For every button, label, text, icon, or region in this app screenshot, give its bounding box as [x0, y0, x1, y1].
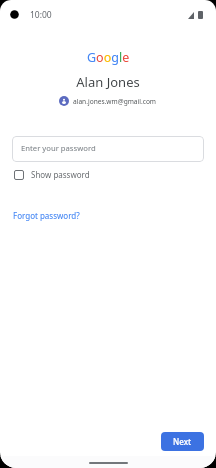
staticText: Alan Jones: [0, 73, 216, 91]
button[interactable]: Forgot password?: [13, 210, 80, 221]
staticText: Next: [173, 436, 192, 447]
staticText: Google: [87, 49, 130, 66]
staticText: 10:00: [30, 9, 52, 21]
other: Mobile signal: [188, 12, 194, 19]
staticText: Enter your password: [21, 143, 96, 153]
staticText: Show password: [31, 169, 90, 180]
button[interactable]: Enter your password: [12, 136, 204, 162]
staticText: alan.jones.wm@gmail.com: [73, 97, 157, 106]
other: Home: [89, 462, 128, 464]
other: Battery: [198, 11, 203, 19]
button[interactable]: Next: [161, 432, 204, 451]
other: Account avatar: [59, 96, 69, 106]
button[interactable]: Show password: [12, 167, 92, 182]
button[interactable]: Account avatar: [58, 96, 158, 106]
